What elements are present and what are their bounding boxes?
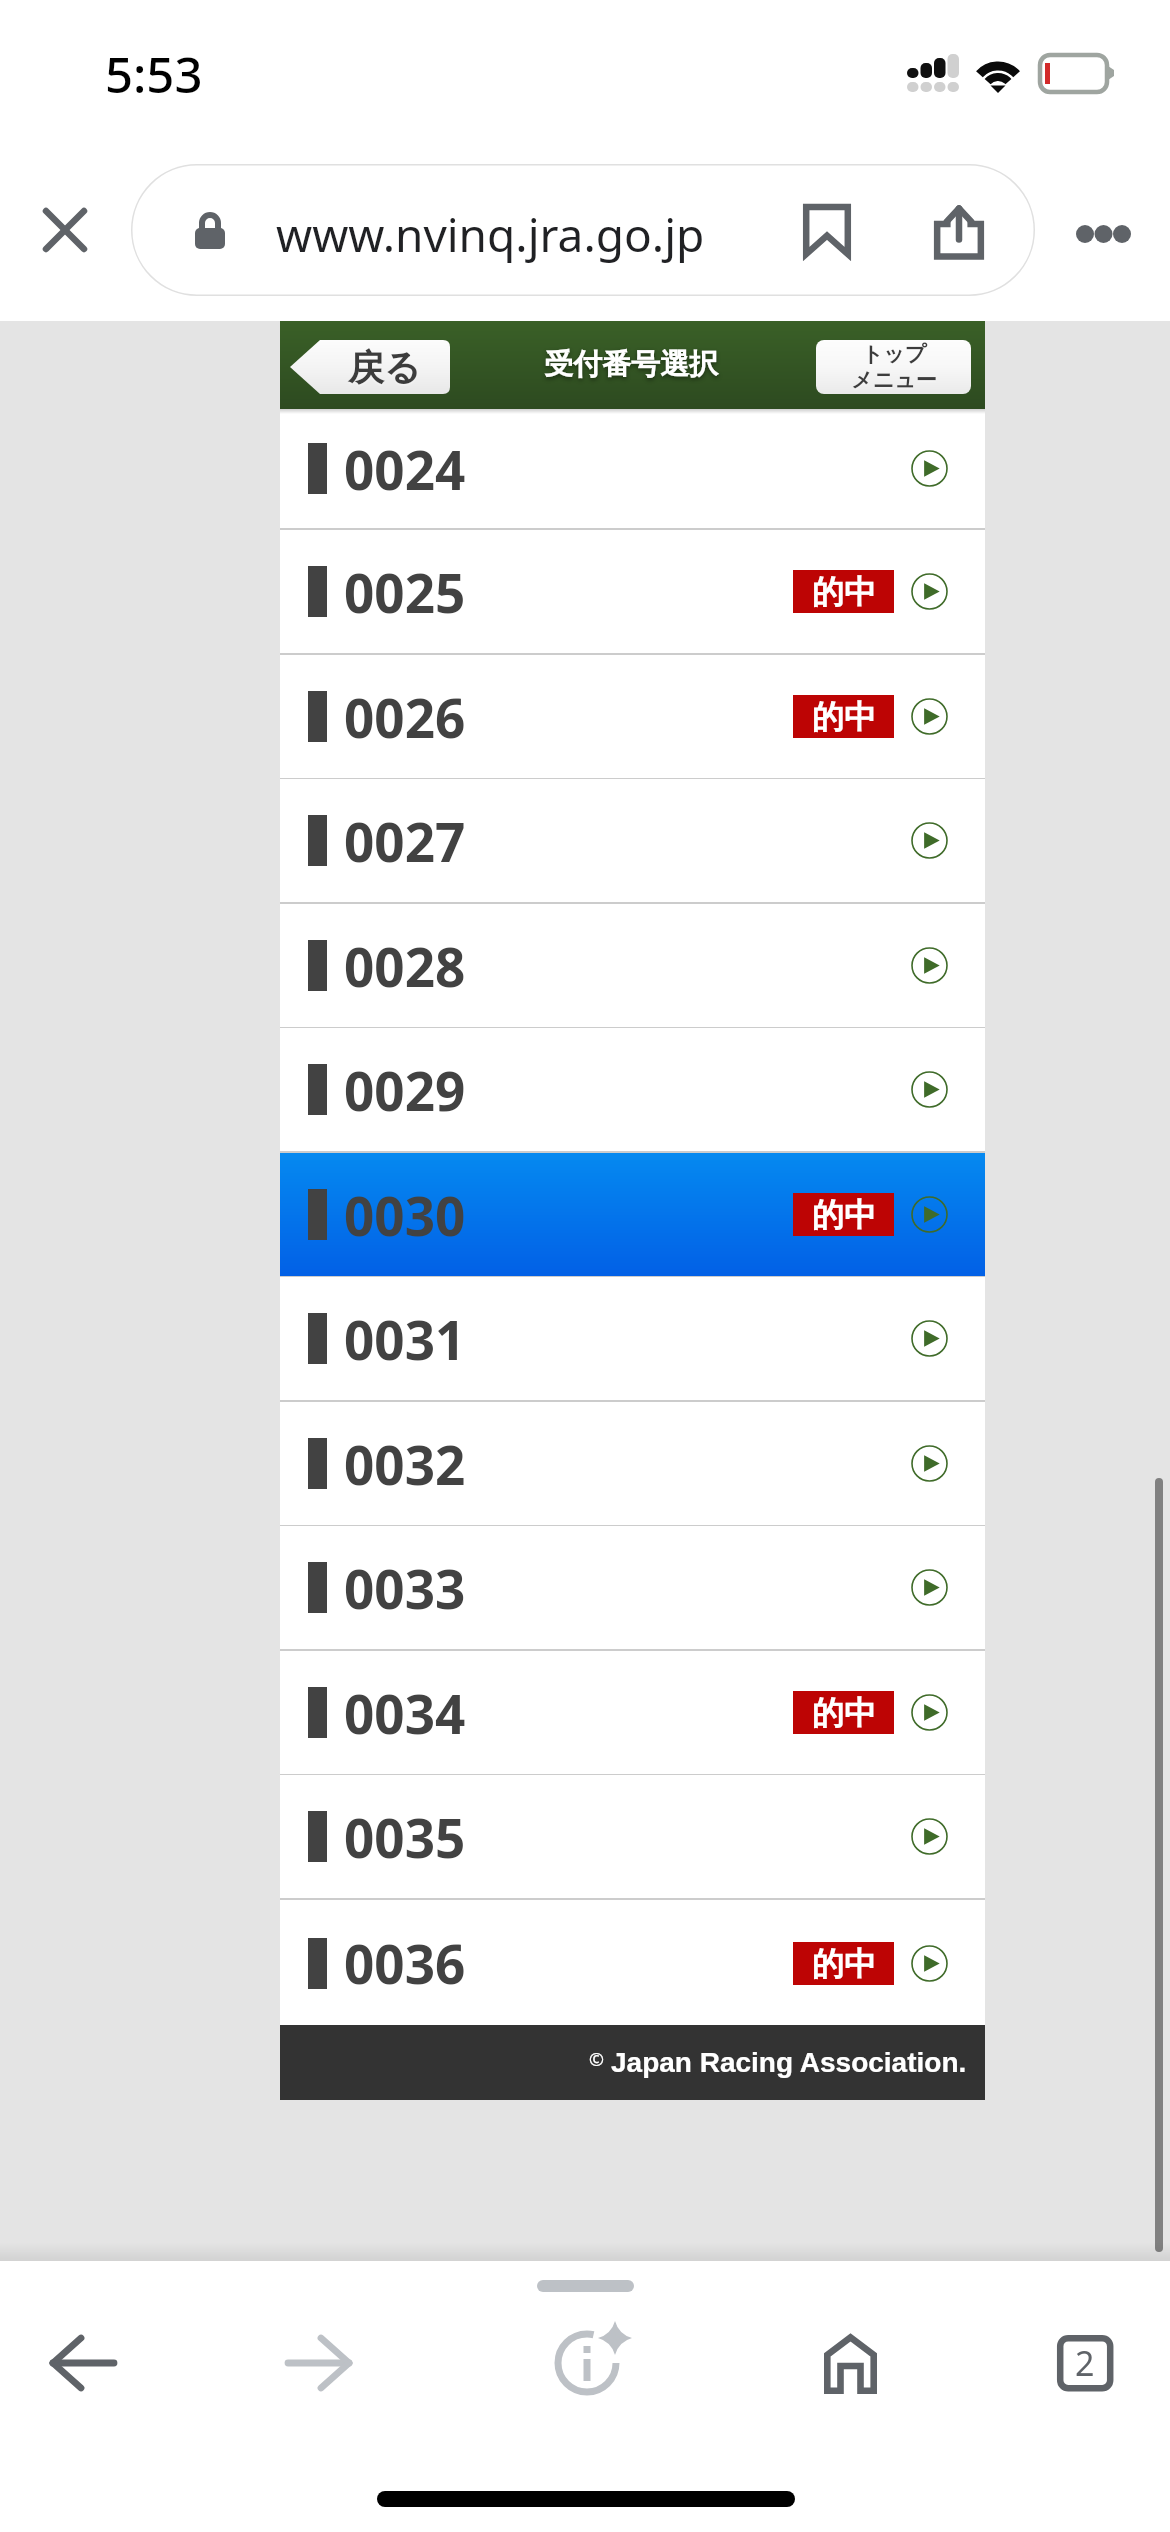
button[interactable]: Close: [20, 184, 110, 274]
button[interactable]: View 0029: [911, 1071, 948, 1108]
button[interactable]: 0035: [280, 1775, 985, 1898]
staticText: 2: [1075, 2340, 1095, 2386]
staticText: 的中: [812, 1195, 876, 1235]
button[interactable]: 0032: [280, 1402, 985, 1525]
staticText: 0029: [344, 1054, 466, 1126]
staticText: 5:53: [105, 41, 203, 108]
staticText: 戻る: [348, 345, 421, 390]
button[interactable]: View 0033: [911, 1569, 948, 1606]
staticText: 受付番号選択: [544, 346, 718, 383]
button[interactable]: 0033: [280, 1526, 985, 1649]
staticText: www.nvinq.jra.go.jp: [276, 203, 705, 266]
staticText: 0024: [344, 433, 466, 505]
button[interactable]: Page info: [535, 2313, 639, 2413]
button[interactable]: 0029: [280, 1028, 985, 1151]
staticText: 的中: [812, 1944, 876, 1984]
button[interactable]: View 0026: [911, 698, 948, 735]
staticText: 的中: [812, 1693, 876, 1733]
button[interactable]: 0030: [280, 1153, 985, 1276]
button[interactable]: 0026: [280, 655, 985, 778]
staticText: 的中: [812, 697, 876, 737]
staticText: 0027: [344, 805, 466, 877]
staticText: 0035: [344, 1801, 466, 1873]
button[interactable]: 0027: [280, 779, 985, 902]
staticText: 0033: [344, 1552, 466, 1624]
staticText: 0031: [344, 1303, 466, 1375]
staticText: 0030: [344, 1179, 466, 1251]
button[interactable]: View 0024: [911, 450, 948, 487]
button[interactable]: Bookmark: [801, 202, 853, 258]
button[interactable]: Home: [800, 2310, 900, 2410]
button[interactable]: www.nvinq.jra.go.jp: [131, 164, 1035, 296]
staticText: 0032: [344, 1428, 466, 1500]
button[interactable]: 戻る: [290, 340, 450, 394]
button[interactable]: Share: [931, 200, 987, 260]
staticText: 0025: [344, 556, 466, 628]
button[interactable]: View 0036: [911, 1945, 948, 1982]
button[interactable]: 0036: [280, 1900, 985, 2026]
button[interactable]: View 0030: [911, 1196, 948, 1233]
button[interactable]: 0028: [280, 904, 985, 1027]
staticText: 的中: [812, 572, 876, 612]
staticText: 0036: [344, 1927, 466, 1999]
button[interactable]: Forward: [266, 2313, 366, 2413]
staticText: 0034: [344, 1677, 466, 1749]
button[interactable]: View 0028: [911, 947, 948, 984]
button[interactable]: View 0027: [911, 822, 948, 859]
button[interactable]: View 0035: [911, 1818, 948, 1855]
staticText: ©: [589, 2047, 604, 2072]
button[interactable]: Tabs: [1054, 2332, 1116, 2394]
button[interactable]: View 0031: [911, 1320, 948, 1357]
button[interactable]: Back: [31, 2313, 131, 2413]
button[interactable]: 0034: [280, 1651, 985, 1774]
button[interactable]: 0024: [280, 409, 985, 528]
button[interactable]: View 0032: [911, 1445, 948, 1482]
button[interactable]: トップ メニュー: [816, 340, 971, 394]
button[interactable]: 0031: [280, 1277, 985, 1400]
button[interactable]: View 0025: [911, 573, 948, 610]
staticText: 0026: [344, 681, 466, 753]
staticText: Japan Racing Association.: [611, 2047, 967, 2078]
button[interactable]: More options: [1058, 186, 1148, 276]
button[interactable]: 0025: [280, 530, 985, 653]
button[interactable]: View 0034: [911, 1694, 948, 1731]
staticText: トップ メニュー: [851, 341, 937, 393]
staticText: 0028: [344, 930, 466, 1002]
